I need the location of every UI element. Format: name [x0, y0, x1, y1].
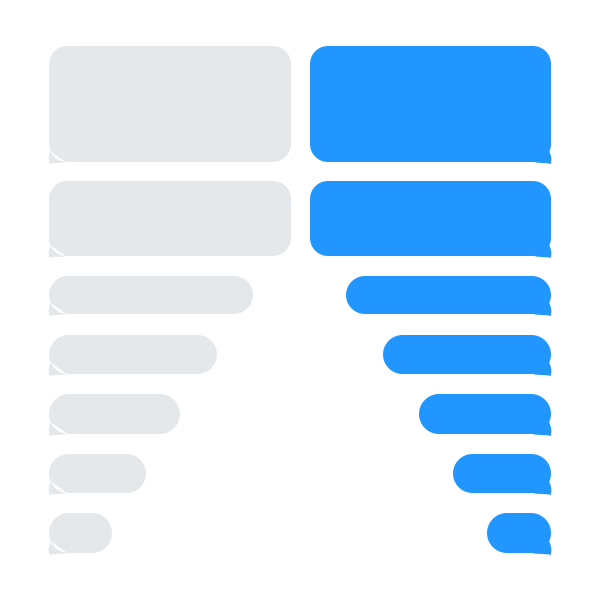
- button[interactable]: Received message: [49, 394, 180, 434]
- button[interactable]: Sent message: [453, 454, 551, 493]
- button[interactable]: Sent message: [310, 181, 551, 256]
- button[interactable]: Received message: [49, 335, 217, 374]
- button[interactable]: Received message: [49, 454, 146, 493]
- button[interactable]: Received message: [49, 276, 253, 314]
- button[interactable]: Sent message: [419, 394, 551, 434]
- button[interactable]: Sent message: [487, 513, 551, 553]
- button[interactable]: Received message: [49, 513, 112, 553]
- button[interactable]: Sent message: [383, 335, 551, 374]
- button[interactable]: Sent message: [346, 276, 551, 314]
- button[interactable]: Sent message: [310, 46, 551, 162]
